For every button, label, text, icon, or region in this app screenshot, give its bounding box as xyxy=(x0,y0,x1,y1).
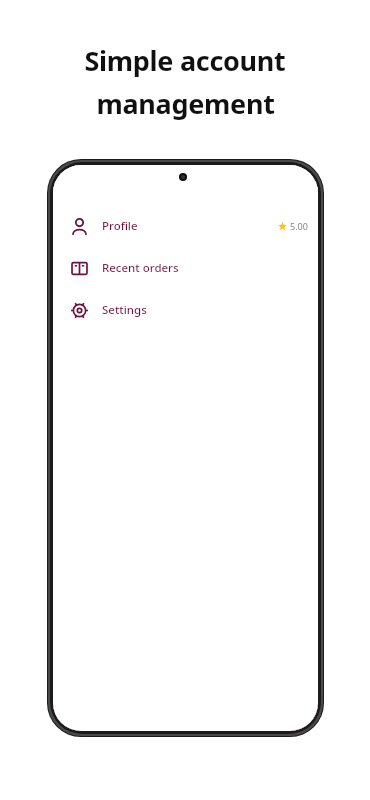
button[interactable]: Recent orders xyxy=(53,247,318,289)
staticText: Recent orders xyxy=(102,260,179,276)
staticText: Simple account xyxy=(84,42,286,79)
staticText: 5.00 xyxy=(290,220,308,232)
button[interactable]: Wallet xyxy=(274,201,308,235)
button[interactable]: Profile xyxy=(53,205,318,247)
staticText: Settings xyxy=(102,302,147,318)
button[interactable]: Settings xyxy=(53,289,318,331)
staticText: management xyxy=(96,85,275,122)
staticText: Profile xyxy=(102,218,138,234)
